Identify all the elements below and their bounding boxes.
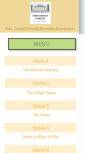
button[interactable]: Store 1 — [5, 56, 77, 66]
button[interactable]: The Game — [5, 111, 77, 117]
staticText: Store 3 — [33, 103, 50, 110]
staticText: Store 5 — [33, 147, 50, 153]
button[interactable]: Store 4 — [5, 123, 77, 133]
staticText: Robin Jo Music & Gifts — [23, 134, 59, 139]
staticText: The Fudge House — [27, 90, 56, 95]
staticText: Sunshine & Company — [23, 67, 59, 72]
button[interactable]: Store 5 — [5, 145, 77, 153]
staticText: Store 1 — [33, 58, 50, 65]
staticText: MENU — [34, 41, 50, 47]
button[interactable]: Store 3 — [5, 101, 77, 111]
staticText: Store 4 — [33, 125, 50, 132]
button[interactable]: Store 2 — [5, 78, 77, 88]
button[interactable]: Founders Square home — [30, 2, 51, 24]
staticText: Your Central Nevada Shopping Experience — [5, 26, 74, 30]
staticText: Store 2 — [33, 80, 50, 87]
button[interactable]: Sunshine & Company — [5, 66, 77, 72]
staticText: The Game — [33, 112, 50, 117]
button[interactable]: The Fudge House — [5, 89, 77, 95]
button[interactable]: Robin Jo Music & Gifts — [5, 133, 77, 139]
button[interactable]: MENU — [8, 38, 76, 50]
